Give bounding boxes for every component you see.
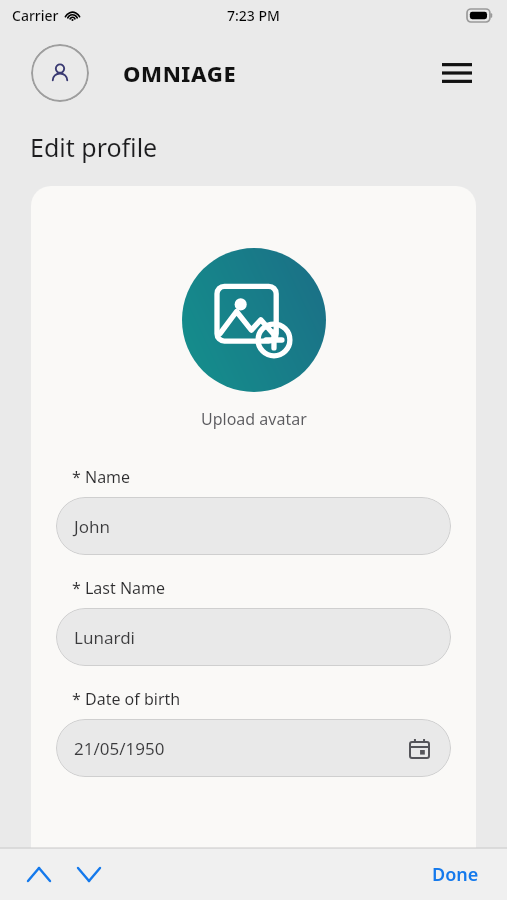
button[interactable]: Next field [68, 853, 110, 895]
staticText: * Date of birth [72, 688, 181, 710]
staticText: Carrier [12, 6, 59, 25]
button[interactable]: Upload avatar [182, 248, 326, 392]
staticText: 7:23 PM [227, 6, 280, 25]
staticText: Done [432, 862, 479, 887]
staticText: * Last Name [72, 577, 166, 599]
button[interactable]: Previous field [18, 853, 60, 895]
button[interactable]: Lunardi [56, 608, 451, 666]
staticText: OMNIAGE [123, 58, 237, 88]
button[interactable]: John [56, 497, 451, 555]
button[interactable]: Upload avatar [201, 408, 307, 430]
staticText: * Name [72, 466, 131, 488]
staticText: 21/05/1950 [74, 737, 165, 760]
button[interactable]: Menu [437, 53, 477, 93]
button[interactable]: 21/05/1950 [56, 719, 451, 777]
staticText: Lunardi [74, 626, 135, 649]
staticText: Edit profile [30, 130, 158, 164]
button[interactable]: Account [31, 44, 89, 102]
staticText: John [74, 515, 110, 538]
button[interactable]: Done [422, 856, 489, 893]
